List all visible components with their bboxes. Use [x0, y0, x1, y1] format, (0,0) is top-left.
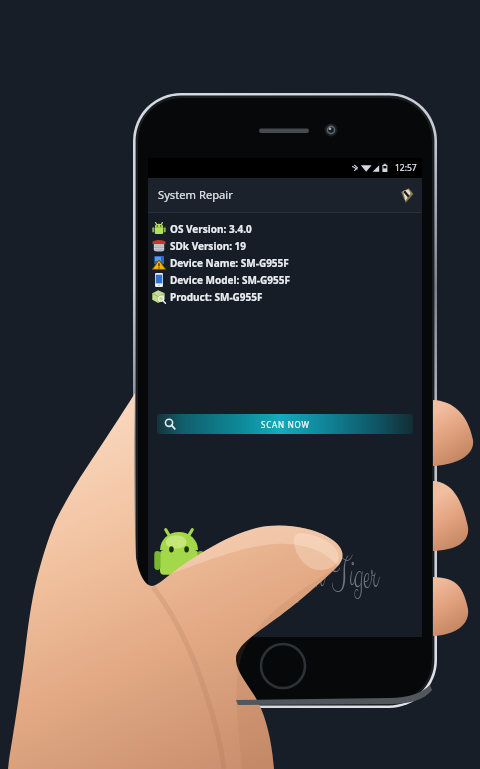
- staticText: SDk Version: 19: [170, 239, 246, 253]
- staticText: Product: SM-G955F: [170, 290, 263, 304]
- button[interactable]: Device Name: SM-G955F: [148, 254, 422, 271]
- staticText: OS Version: 3.4.0: [170, 222, 252, 236]
- staticText: Device Model: SM-G955F: [170, 273, 290, 287]
- button[interactable]: Repair tools: [394, 183, 418, 207]
- staticText: System Repair: [158, 187, 233, 202]
- staticText: 12:57: [395, 162, 417, 174]
- button[interactable]: SDk Version: 19: [148, 237, 422, 254]
- staticText: SCAN NOW: [261, 419, 310, 430]
- button[interactable]: OS Version: 3.4.0: [148, 220, 422, 237]
- button[interactable]: Product: SM-G955F: [148, 288, 422, 305]
- button[interactable]: SCAN NOW: [157, 414, 413, 434]
- staticText: Device Name: SM-G955F: [170, 256, 289, 270]
- button[interactable]: Device Model: SM-G955F: [148, 271, 422, 288]
- button[interactable]: Search: [164, 418, 176, 430]
